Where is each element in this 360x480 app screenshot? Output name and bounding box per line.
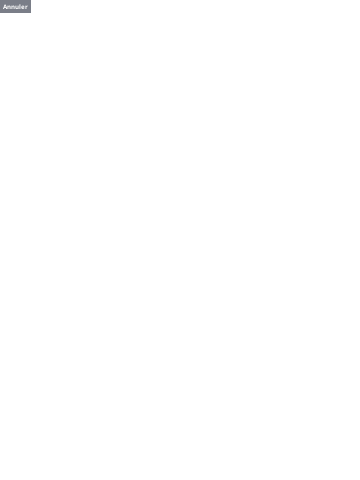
staticText: Annuler [3,2,28,11]
